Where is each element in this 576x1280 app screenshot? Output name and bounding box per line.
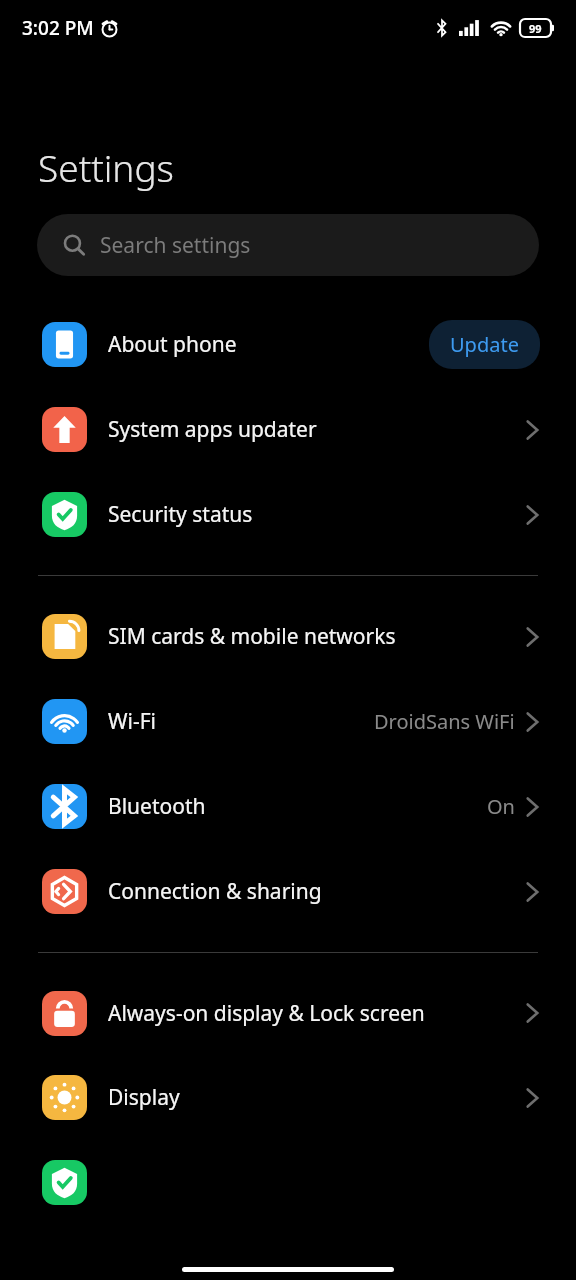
- button[interactable]: Security status: [0, 472, 576, 557]
- staticText: SIM cards & mobile networks: [108, 622, 515, 651]
- staticText: Display: [108, 1083, 515, 1112]
- button[interactable]: Update: [429, 320, 540, 369]
- staticText: Update: [450, 331, 519, 358]
- staticText: Wi-Fi: [108, 707, 364, 736]
- staticText: DroidSans WiFi: [374, 708, 515, 735]
- staticText: Always-on display & Lock screen: [108, 999, 515, 1028]
- button[interactable]: About phone: [0, 302, 576, 387]
- staticText: Connection & sharing: [108, 877, 515, 906]
- staticText: Bluetooth: [108, 792, 477, 821]
- button[interactable]: Connection & sharing: [0, 849, 576, 934]
- button[interactable]: Bluetooth: [0, 764, 576, 849]
- staticText: On: [487, 793, 515, 820]
- staticText: Search settings: [100, 231, 251, 260]
- staticText: About phone: [108, 330, 419, 359]
- staticText: Settings: [38, 142, 174, 192]
- staticText: Security status: [108, 500, 515, 529]
- button[interactable]: System apps updater: [0, 387, 576, 472]
- staticText: 99: [529, 21, 542, 36]
- button[interactable]: Display: [0, 1055, 576, 1140]
- staticText: System apps updater: [108, 415, 515, 444]
- button[interactable]: SIM cards & mobile networks: [0, 594, 576, 679]
- button[interactable]: [0, 1140, 576, 1224]
- staticText: 3:02 PM: [22, 15, 94, 41]
- button[interactable]: Search settings: [37, 214, 539, 276]
- button[interactable]: Always-on display & Lock screen: [0, 971, 576, 1055]
- button[interactable]: Wi-Fi: [0, 679, 576, 764]
